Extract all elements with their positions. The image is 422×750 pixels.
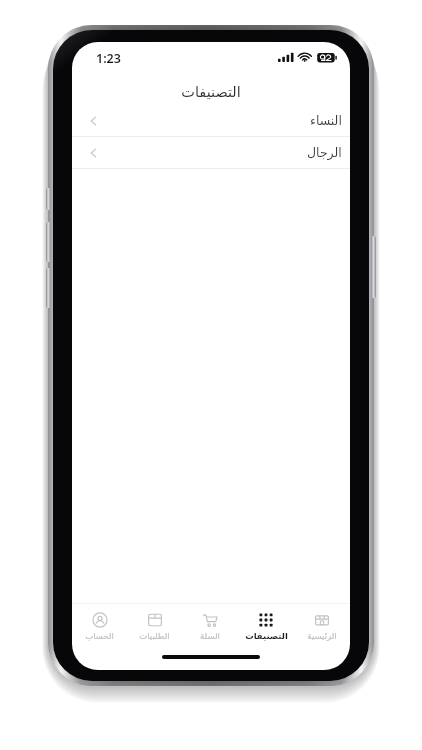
staticText: الحساب — [85, 631, 114, 641]
staticText: الرجال — [307, 145, 342, 160]
staticText: الطلبيات — [139, 631, 170, 641]
staticText: التصنيفات — [245, 631, 288, 641]
staticText: الرئيسية — [307, 631, 337, 641]
staticText: التصنيفات — [181, 84, 241, 101]
staticText: 1:23 — [96, 50, 121, 67]
button[interactable]: الرئيسية — [294, 604, 350, 648]
button[interactable]: النساء — [72, 105, 350, 136]
button[interactable]: التصنيفات — [238, 604, 294, 648]
staticText: النساء — [310, 113, 342, 128]
button[interactable]: الحساب — [72, 604, 127, 648]
staticText: السلة — [200, 631, 220, 641]
button[interactable]: الرجال — [72, 137, 350, 168]
button[interactable]: الطلبيات — [127, 604, 182, 648]
button[interactable]: السلة — [182, 604, 238, 648]
